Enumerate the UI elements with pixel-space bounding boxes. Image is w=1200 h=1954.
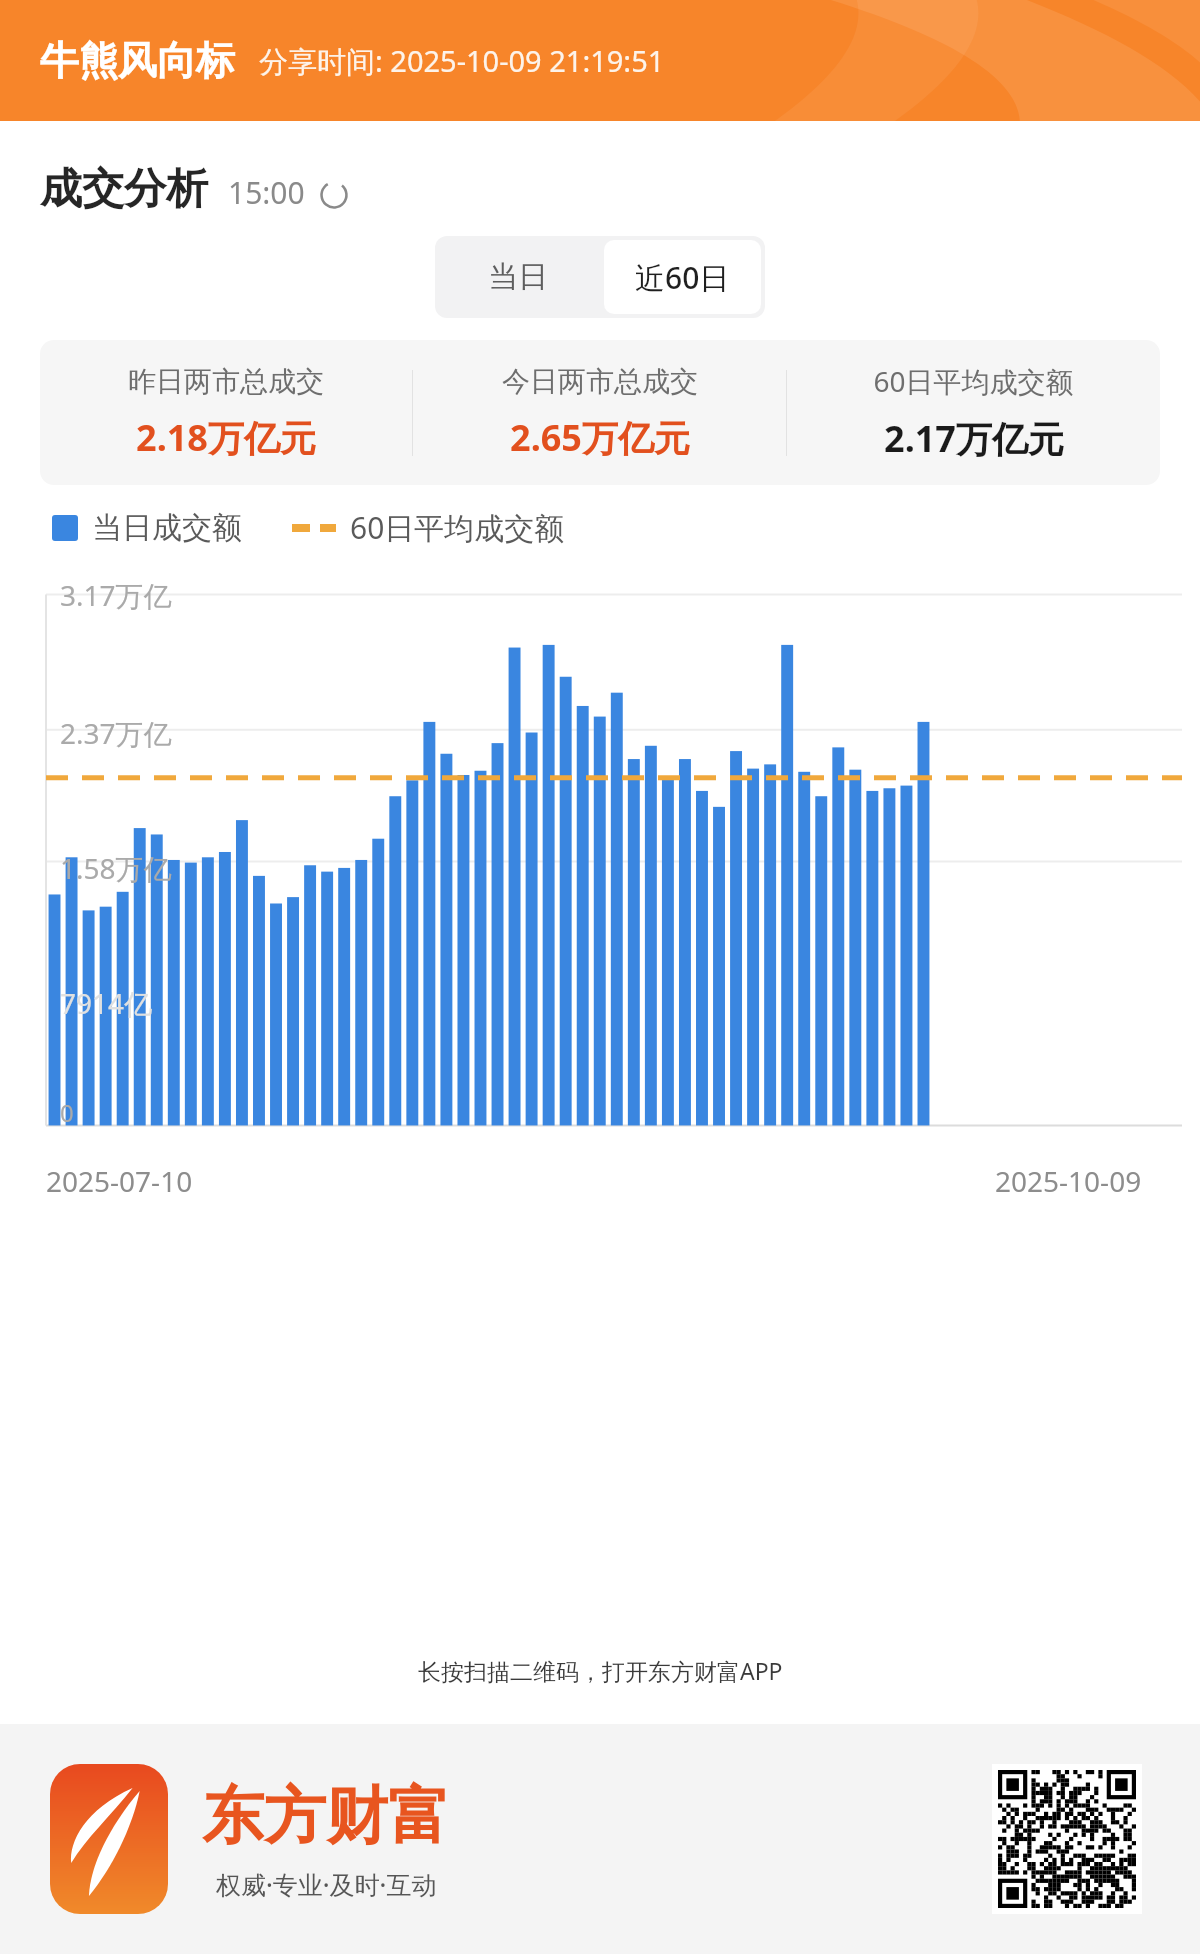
staticText: 2025-10-09 (995, 1162, 1142, 1200)
staticText: 权威·专业·及时·互动 (216, 1867, 437, 1901)
staticText: 7914亿 (60, 984, 153, 1022)
staticText: 1.58万亿 (60, 849, 172, 887)
button[interactable]: 60日平均成交额 (787, 340, 1160, 485)
staticText: 分享时间: 2025-10-09 21:19:51 (259, 41, 665, 81)
button[interactable]: 当日 (435, 236, 600, 318)
staticText: 15:00 (228, 172, 305, 213)
staticText: 3.17万亿 (60, 576, 172, 614)
button[interactable]: Refresh (319, 180, 349, 210)
staticText: 牛熊风向标 (40, 36, 235, 85)
button[interactable]: 昨日两市总成交 (40, 340, 412, 485)
staticText: 2.18万亿元 (136, 413, 316, 462)
staticText: 2.37万亿 (60, 714, 172, 752)
staticText: 成交分析 (40, 163, 208, 216)
staticText: 当日 (488, 258, 548, 296)
button[interactable]: 今日两市总成交 (413, 340, 786, 485)
staticText: 0 (60, 1096, 74, 1129)
button[interactable]: 近60日 (604, 240, 761, 314)
staticText: 东方财富 (202, 1777, 450, 1855)
staticText: 2.17万亿元 (884, 414, 1064, 463)
staticText: 60日平均成交额 (350, 507, 565, 548)
staticText: 昨日两市总成交 (128, 364, 324, 399)
staticText: 今日两市总成交 (502, 364, 698, 399)
staticText: 2.65万亿元 (510, 413, 690, 462)
staticText: 当日成交额 (92, 509, 242, 547)
staticText: 长按扫描二维码，打开东方财富APP (418, 1655, 783, 1686)
staticText: 2025-07-10 (46, 1162, 193, 1200)
staticText: 近60日 (635, 257, 730, 298)
staticText: 60日平均成交额 (873, 362, 1074, 400)
button[interactable]: QR code (992, 1764, 1142, 1914)
